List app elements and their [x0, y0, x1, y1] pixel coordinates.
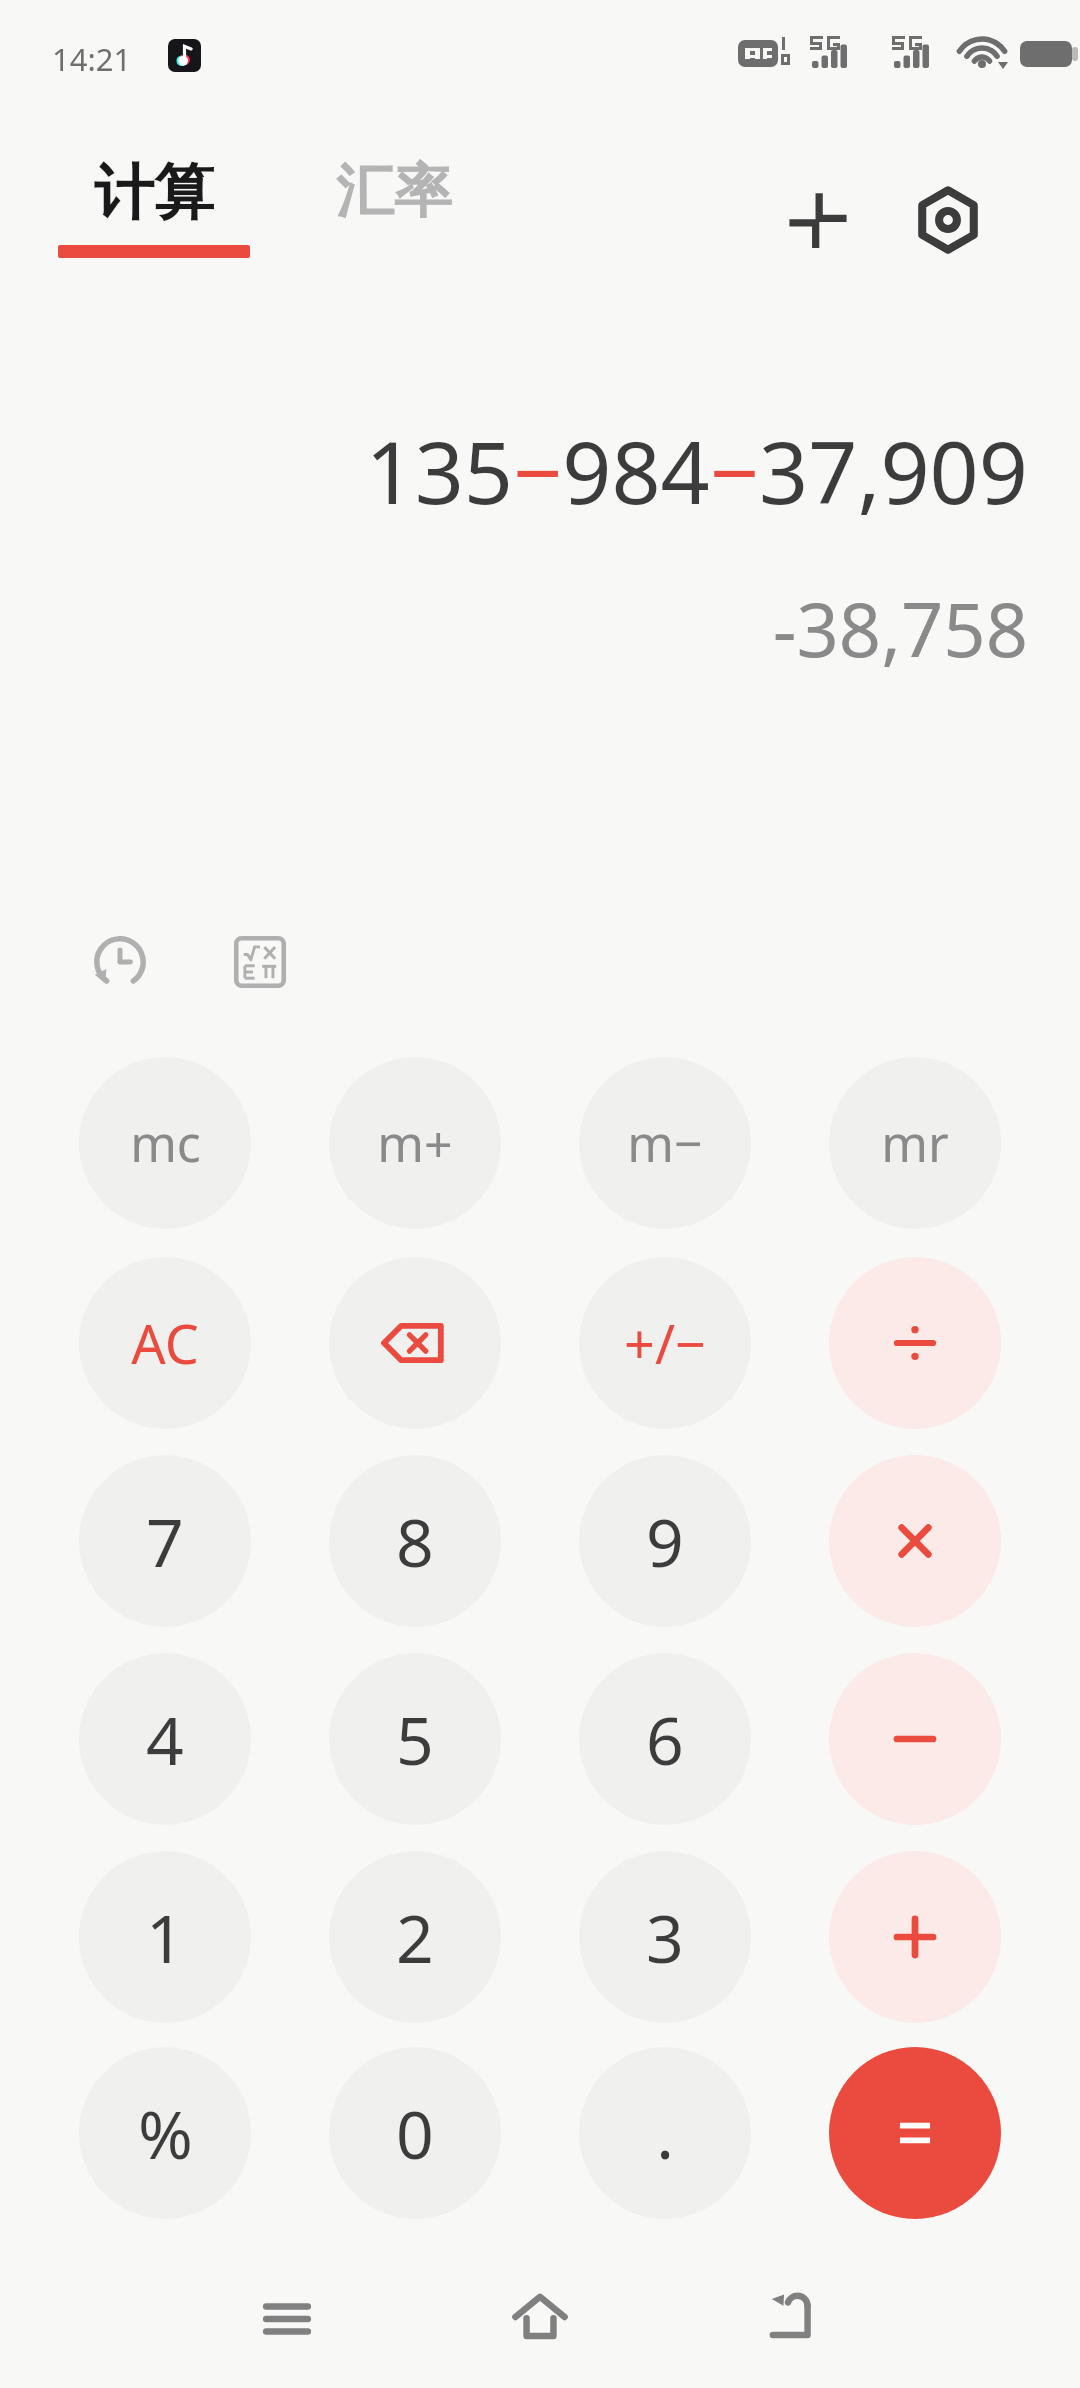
staticText: 2 — [396, 1892, 434, 1982]
staticText: +/− — [624, 1306, 706, 1380]
button[interactable]: 1 — [79, 1851, 251, 2023]
button[interactable]: m+ — [329, 1057, 501, 1229]
button[interactable]: Scientific mode — [218, 920, 302, 1004]
button[interactable]: 4 — [79, 1653, 251, 1825]
staticText: m+ — [377, 1109, 453, 1177]
button[interactable]: +/− — [579, 1257, 751, 1429]
staticText: -38,758 — [772, 578, 1028, 679]
staticText: 7 — [146, 1496, 184, 1586]
staticText: 8 — [396, 1496, 434, 1586]
button[interactable]: Home — [485, 2262, 595, 2372]
button[interactable]: 5 — [329, 1653, 501, 1825]
button[interactable]: . — [579, 2047, 751, 2219]
staticText: 5 — [396, 1694, 434, 1784]
button[interactable]: Floating window — [770, 172, 866, 268]
button[interactable]: Divide — [829, 1257, 1001, 1429]
staticText: mr — [881, 1109, 949, 1177]
staticText: m− — [627, 1109, 703, 1177]
button[interactable]: History — [78, 920, 162, 1004]
staticText: % — [138, 2088, 193, 2178]
button[interactable]: Settings — [900, 172, 996, 268]
button[interactable]: Recent apps — [232, 2264, 342, 2374]
staticText: . — [656, 2088, 674, 2178]
button[interactable]: mr — [829, 1057, 1001, 1229]
button[interactable]: % — [79, 2047, 251, 2219]
staticText: 3 — [646, 1892, 684, 1982]
staticText: 135−984−37,909 — [365, 412, 1028, 529]
button[interactable]: AC — [79, 1257, 251, 1429]
button[interactable]: 7 — [79, 1455, 251, 1627]
button[interactable]: Back — [738, 2262, 848, 2372]
button[interactable]: 汇率 — [330, 155, 458, 228]
staticText: 4 — [146, 1694, 184, 1784]
button[interactable]: 8 — [329, 1455, 501, 1627]
staticText: 14:21 — [52, 38, 132, 80]
staticText: 6 — [646, 1694, 684, 1784]
staticText: AC — [131, 1306, 199, 1380]
button[interactable]: 3 — [579, 1851, 751, 2023]
button[interactable]: 2 — [329, 1851, 501, 2023]
button[interactable]: m− — [579, 1057, 751, 1229]
button[interactable]: 6 — [579, 1653, 751, 1825]
button[interactable]: mc — [79, 1057, 251, 1229]
button[interactable]: 计算 — [52, 155, 256, 258]
staticText: 9 — [646, 1496, 684, 1586]
button[interactable]: 0 — [329, 2047, 501, 2219]
button[interactable]: 9 — [579, 1455, 751, 1627]
button[interactable]: Equals — [829, 2047, 1001, 2219]
staticText: 汇率 — [336, 155, 452, 228]
staticText: mc — [130, 1109, 201, 1177]
button[interactable]: Add — [829, 1851, 1001, 2023]
staticText: 0 — [396, 2088, 434, 2178]
staticText: 1 — [146, 1892, 184, 1982]
button[interactable]: Multiply — [829, 1455, 1001, 1627]
button[interactable]: Backspace — [329, 1257, 501, 1429]
button[interactable]: Subtract — [829, 1653, 1001, 1825]
staticText: 计算 — [94, 155, 214, 231]
